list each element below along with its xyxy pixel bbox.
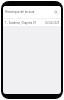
button[interactable]: Search: [53, 9, 59, 15]
staticText: Historique de lecture: [5, 10, 53, 14]
button[interactable]: 1 - Sandrine, Chapitre 01: [3, 19, 61, 26]
staticText: 1 - Sandrine, Chapitre 01: [5, 21, 45, 25]
staticText: 06/04/2025: [45, 21, 60, 25]
